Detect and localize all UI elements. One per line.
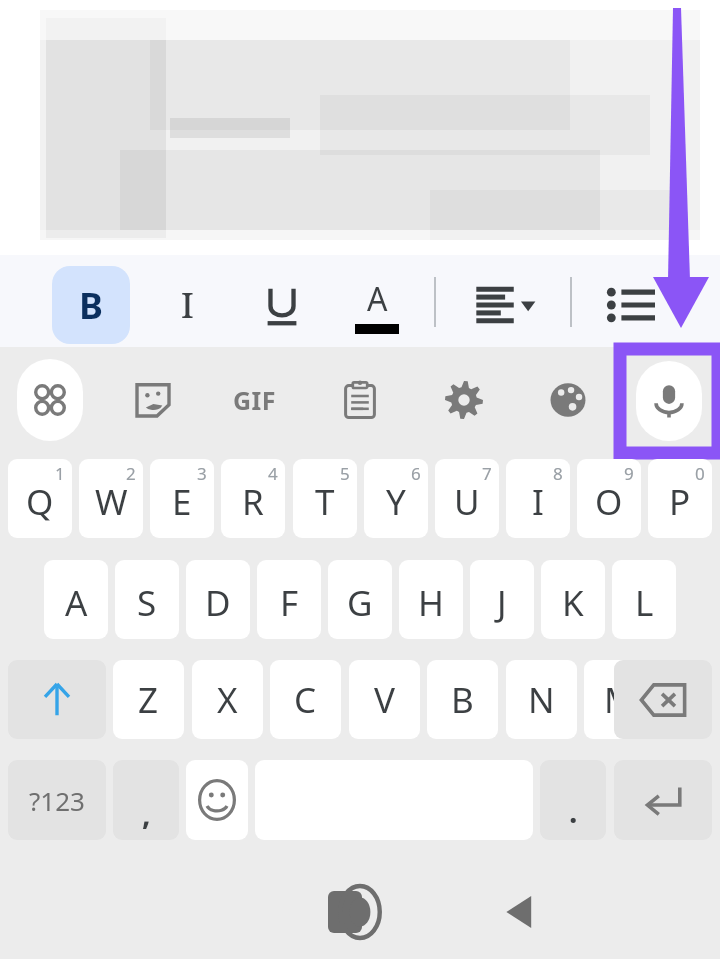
button[interactable]: Y: [364, 459, 428, 538]
button[interactable]: Clipboard: [327, 359, 393, 441]
button[interactable]: R: [221, 459, 285, 538]
button[interactable]: D: [186, 560, 250, 639]
button[interactable]: Themes: [535, 359, 601, 441]
staticText: 4: [268, 462, 278, 485]
staticText: U: [454, 478, 480, 526]
staticText: 2: [126, 462, 136, 485]
staticText: L: [635, 579, 654, 627]
button[interactable]: O: [577, 459, 641, 538]
button[interactable]: Z: [113, 660, 184, 739]
staticText: T: [315, 478, 335, 526]
staticText: W: [95, 478, 128, 526]
button[interactable]: L: [612, 560, 676, 639]
button[interactable]: Back: [475, 867, 565, 957]
staticText: 5: [340, 462, 350, 485]
staticText: V: [374, 676, 396, 724]
staticText: D: [205, 579, 231, 627]
staticText: S: [137, 579, 157, 627]
staticText: 8: [553, 462, 563, 485]
button[interactable]: GIF: [222, 359, 288, 441]
staticText: Q: [26, 478, 54, 526]
button[interactable]: C: [270, 660, 341, 739]
staticText: N: [528, 676, 555, 724]
staticText: ,: [142, 793, 151, 834]
button[interactable]: Shift: [8, 660, 106, 739]
button[interactable]: I: [506, 459, 570, 538]
staticText: E: [172, 478, 192, 526]
staticText: 9: [624, 462, 634, 485]
button[interactable]: Alignment: [462, 266, 554, 344]
staticText: G: [347, 579, 373, 627]
staticText: H: [418, 579, 444, 627]
button[interactable]: Recents: [300, 867, 390, 957]
staticText: M: [604, 676, 636, 724]
button[interactable]: ?123: [8, 760, 106, 840]
button[interactable]: H: [399, 560, 463, 639]
staticText: O: [595, 478, 623, 526]
staticText: 7: [482, 462, 492, 485]
button[interactable]: U: [435, 459, 499, 538]
staticText: R: [242, 478, 264, 526]
button[interactable]: P: [648, 459, 712, 538]
button[interactable]: F: [257, 560, 321, 639]
staticText: Y: [386, 478, 406, 526]
staticText: .: [569, 791, 578, 832]
staticText: Z: [138, 676, 159, 724]
button[interactable]: Underline: [243, 266, 321, 344]
button[interactable]: .: [540, 760, 606, 840]
staticText: X: [217, 676, 238, 724]
button[interactable]: Italic: [148, 266, 226, 344]
button[interactable]: Apps: [17, 359, 83, 441]
staticText: ?123: [29, 783, 85, 818]
staticText: K: [562, 579, 584, 627]
button[interactable]: ,: [113, 760, 179, 840]
staticText: P: [669, 478, 691, 526]
staticText: 1: [55, 462, 65, 485]
button[interactable]: G: [328, 560, 392, 639]
staticText: 3: [197, 462, 207, 485]
staticText: A: [367, 277, 388, 321]
button[interactable]: K: [541, 560, 605, 639]
button[interactable]: B: [427, 660, 498, 739]
button[interactable]: Settings: [431, 359, 497, 441]
button[interactable]: X: [192, 660, 263, 739]
button[interactable]: Text color: [338, 266, 416, 344]
button[interactable]: T: [293, 459, 357, 538]
button[interactable]: N: [506, 660, 577, 739]
button[interactable]: Q: [8, 459, 72, 538]
staticText: J: [497, 579, 507, 627]
button[interactable]: S: [115, 560, 179, 639]
button[interactable]: J: [470, 560, 534, 639]
staticText: 6: [411, 462, 421, 485]
button[interactable]: Bulleted list: [592, 266, 670, 344]
button[interactable]: A: [44, 560, 108, 639]
button[interactable]: Voice input: [636, 361, 702, 441]
button[interactable]: V: [349, 660, 420, 739]
staticText: F: [280, 579, 299, 627]
staticText: A: [65, 579, 88, 627]
button[interactable]: Enter: [614, 760, 712, 840]
button[interactable]: Backspace: [614, 660, 712, 739]
staticText: I: [532, 478, 544, 526]
staticText: I: [181, 282, 194, 328]
button[interactable]: W: [79, 459, 143, 538]
button[interactable]: B: [52, 266, 130, 344]
staticText: GIF: [233, 383, 277, 417]
button[interactable]: E: [150, 459, 214, 538]
button[interactable]: M: [584, 660, 655, 739]
button[interactable]: Emoji: [186, 760, 248, 840]
button[interactable]: Stickers: [120, 359, 186, 441]
staticText: B: [451, 676, 474, 724]
staticText: C: [294, 676, 317, 724]
staticText: B: [79, 281, 103, 330]
button[interactable]: Home: [315, 867, 405, 957]
staticText: 0: [695, 462, 705, 485]
